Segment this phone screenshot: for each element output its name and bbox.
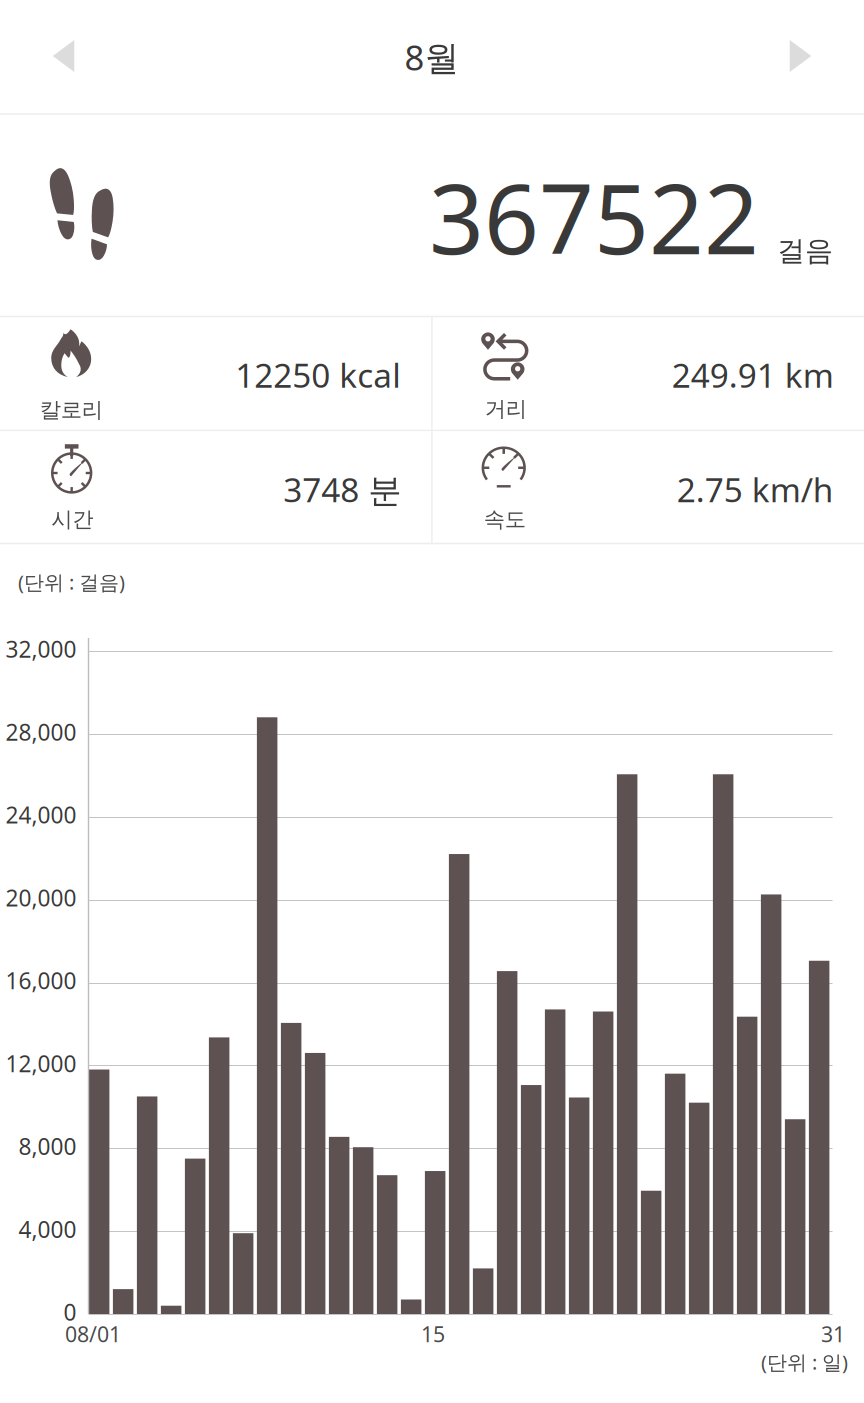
staticText: 12250 kcal <box>235 353 401 397</box>
staticText: 8월 <box>404 34 459 80</box>
button[interactable]: 속도 <box>433 431 864 544</box>
staticText: 367522 <box>429 153 759 281</box>
button[interactable]: Previous month <box>23 10 104 102</box>
staticText: 31 <box>821 1320 845 1348</box>
staticText: 16,000 <box>5 965 76 995</box>
staticText: 24,000 <box>5 800 76 830</box>
button[interactable]: 거리 <box>433 317 864 430</box>
staticText: 15 <box>421 1320 445 1348</box>
staticText: (단위 : 일) <box>761 1349 848 1375</box>
staticText: 3748 분 <box>283 467 401 512</box>
staticText: 걸음 <box>777 234 833 268</box>
staticText: 4,000 <box>18 1214 76 1244</box>
staticText: 249.91 km <box>672 353 834 397</box>
staticText: (단위 : 걸음) <box>18 569 125 595</box>
staticText: 08/01 <box>65 1320 121 1348</box>
staticText: 거리 <box>485 396 527 422</box>
staticText: 20,000 <box>5 883 76 913</box>
staticText: 32,000 <box>5 634 76 664</box>
staticText: 28,000 <box>5 717 76 747</box>
staticText: 8,000 <box>18 1131 76 1161</box>
staticText: 속도 <box>484 506 526 532</box>
button[interactable]: Next month <box>760 10 841 102</box>
staticText: 2.75 km/h <box>677 467 834 512</box>
staticText: 0 <box>63 1297 76 1327</box>
staticText: 12,000 <box>5 1048 76 1078</box>
staticText: 칼로리 <box>40 397 103 423</box>
button[interactable]: 칼로리 <box>0 317 431 430</box>
staticText: 시간 <box>51 506 93 532</box>
button[interactable]: 시간 <box>0 431 431 544</box>
